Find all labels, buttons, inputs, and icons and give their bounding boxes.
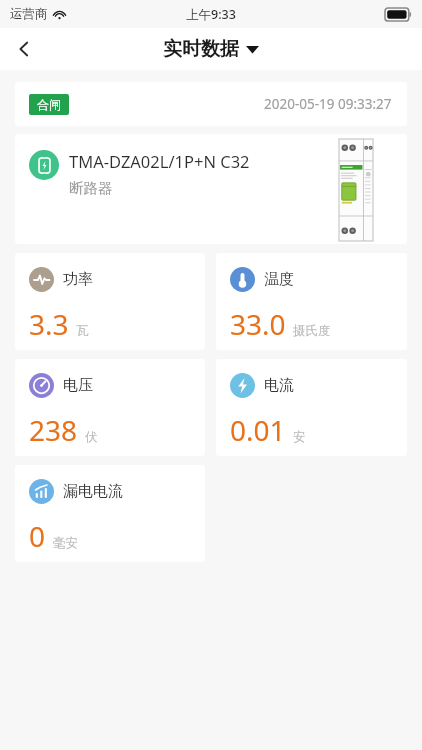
staticText: 断路器 [69,179,113,197]
staticText: 33.0 [230,305,286,343]
staticText: 238 [29,411,78,449]
staticText: 0.01 [230,411,286,449]
button[interactable]: TMA-DZA02L/1P+N C32 [15,134,407,244]
button[interactable]: 功率 [15,253,205,350]
staticText: 2020-05-19 09:33:27 [264,95,392,113]
staticText: 安 [293,429,306,445]
staticText: 运营商 [10,6,48,22]
staticText: 上午9:33 [186,6,236,23]
button[interactable]: 漏电电流 [15,465,205,562]
staticText: 瓦 [76,323,89,339]
staticText: 温度 [264,270,294,289]
staticText: 毫安 [53,535,78,551]
staticText: 伏 [85,429,98,445]
button[interactable]: Back [0,28,48,70]
staticText: 实时数据 [163,37,239,61]
button[interactable]: 合闸 [15,82,407,126]
button[interactable]: 温度 [216,253,407,350]
staticText: 摄氏度 [293,323,331,339]
button[interactable]: 实时数据 [163,37,259,61]
staticText: 漏电电流 [63,482,123,501]
staticText: TMA-DZA02L/1P+N C32 [69,150,250,172]
staticText: 功率 [63,270,93,289]
staticText: 3.3 [29,305,69,343]
button[interactable]: 电流 [216,359,407,456]
staticText: 电流 [264,376,294,395]
staticText: 合闸 [37,97,61,112]
staticText: 0 [29,517,46,555]
button[interactable]: 电压 [15,359,205,456]
staticText: 电压 [63,376,93,395]
